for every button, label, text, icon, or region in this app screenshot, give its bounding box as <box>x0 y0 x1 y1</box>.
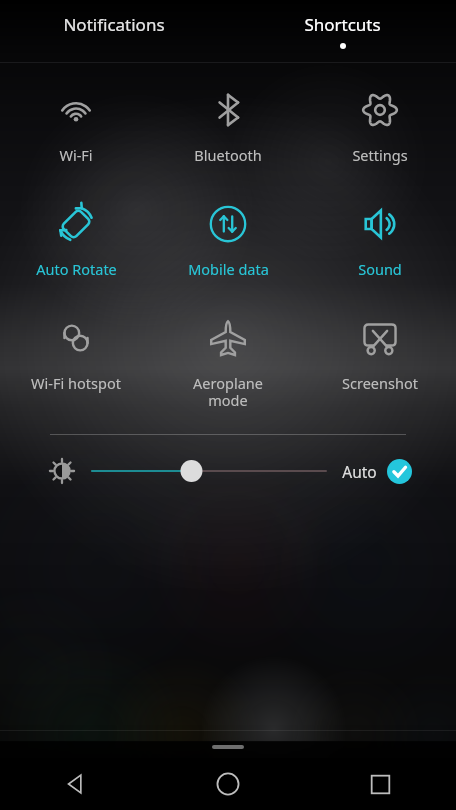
button[interactable]: Bluetooth <box>152 87 304 167</box>
button[interactable]: Aeroplane mode <box>152 315 304 412</box>
staticText: Shortcuts <box>304 13 381 36</box>
button[interactable]: Shortcuts <box>228 0 456 62</box>
button[interactable]: Brightness slider <box>92 451 326 491</box>
staticText: Wi-Fi hotspot <box>31 373 121 393</box>
staticText: Notifications <box>63 13 165 36</box>
staticText: Settings <box>352 145 408 165</box>
button[interactable]: Recent apps <box>304 758 456 810</box>
button[interactable]: Sound <box>304 201 456 281</box>
button[interactable]: Wi-Fi <box>0 87 152 167</box>
button[interactable]: Brightness <box>44 453 80 489</box>
button[interactable]: Notifications <box>0 0 228 62</box>
button[interactable]: Settings <box>304 87 456 167</box>
button[interactable]: Collapse panel <box>0 731 456 758</box>
staticText: Aeroplane mode <box>193 373 263 410</box>
button[interactable]: Home <box>152 758 304 810</box>
staticText: Auto <box>342 461 377 482</box>
button[interactable]: Wi-Fi hotspot <box>0 315 152 395</box>
button[interactable]: Auto <box>342 459 412 484</box>
staticText: Bluetooth <box>194 145 262 165</box>
staticText: Auto Rotate <box>36 259 117 279</box>
staticText: Sound <box>358 259 402 279</box>
staticText: Mobile data <box>188 259 269 279</box>
button[interactable]: Back <box>0 758 152 810</box>
button[interactable]: Screenshot <box>304 315 456 395</box>
staticText: Screenshot <box>342 373 418 393</box>
staticText: Wi-Fi <box>59 145 93 165</box>
button[interactable]: Mobile data <box>152 201 304 281</box>
button[interactable]: Auto Rotate <box>0 201 152 281</box>
